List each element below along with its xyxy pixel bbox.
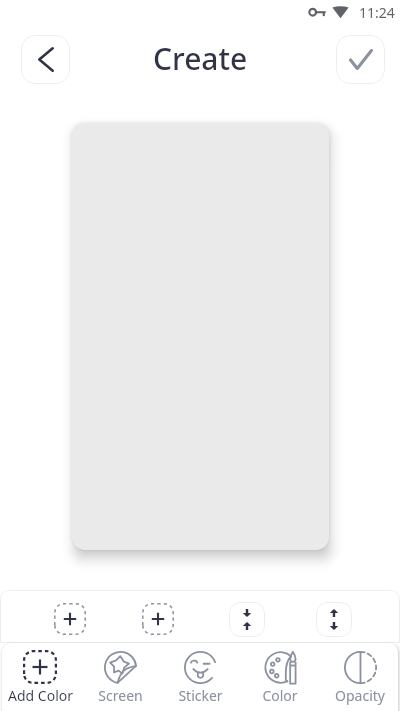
button[interactable]: Add layer xyxy=(54,603,86,635)
staticText: Sticker xyxy=(178,686,223,705)
button[interactable]: Screen xyxy=(80,643,160,711)
staticText: Color xyxy=(262,686,298,705)
button[interactable]: Add Color xyxy=(0,643,80,711)
button[interactable]: Sticker xyxy=(160,643,240,711)
button[interactable]: Done xyxy=(336,35,385,84)
staticText: Opacity xyxy=(335,686,385,705)
staticText: Screen xyxy=(98,686,143,705)
button[interactable]: Add layer xyxy=(142,603,174,635)
button[interactable]: Collapse xyxy=(229,602,265,637)
button[interactable]: Color xyxy=(240,643,320,711)
staticText: 11:24 xyxy=(359,3,395,22)
staticText: Create xyxy=(153,38,248,79)
staticText: Add Color xyxy=(8,686,73,705)
button[interactable]: Back xyxy=(21,35,70,84)
button[interactable]: Expand xyxy=(316,602,352,637)
button[interactable]: Opacity xyxy=(320,643,400,711)
